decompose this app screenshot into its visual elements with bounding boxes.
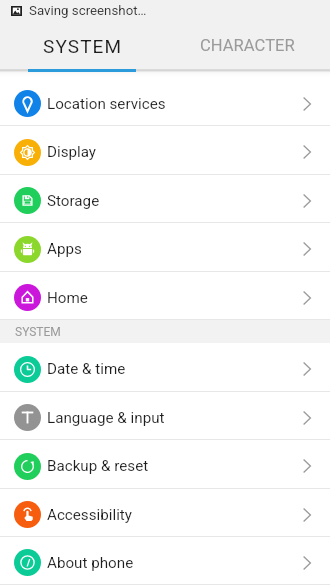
button[interactable]: Display [0, 126, 330, 175]
staticText: SYSTEM [15, 325, 61, 339]
staticText: Location services [47, 95, 166, 113]
button[interactable]: Home [0, 272, 330, 320]
button[interactable]: SYSTEM [0, 22, 165, 69]
button[interactable]: Language & input [0, 392, 330, 440]
button[interactable]: Apps [0, 223, 330, 272]
staticText: CHARACTER [200, 36, 295, 55]
staticText: Storage [47, 192, 100, 210]
staticText: Home [47, 289, 88, 307]
button[interactable]: Accessibility [0, 489, 330, 537]
staticText: Backup & reset [47, 457, 149, 475]
button[interactable]: Storage [0, 175, 330, 223]
button[interactable]: Backup & reset [0, 440, 330, 489]
button[interactable]: CHARACTER [165, 22, 330, 69]
button[interactable]: About phone [0, 537, 330, 585]
staticText: About phone [47, 554, 134, 572]
staticText: Date & time [47, 360, 126, 378]
staticText: Saving screenshot… [29, 3, 147, 19]
staticText: Display [47, 143, 97, 161]
button[interactable]: Location services [0, 78, 330, 126]
staticText: Apps [47, 240, 82, 258]
button[interactable]: Date & time [0, 343, 330, 392]
other: Screenshot notification [11, 6, 22, 16]
staticText: SYSTEM [43, 35, 123, 57]
staticText: Language & input [47, 409, 165, 427]
staticText: Accessibility [47, 506, 132, 524]
